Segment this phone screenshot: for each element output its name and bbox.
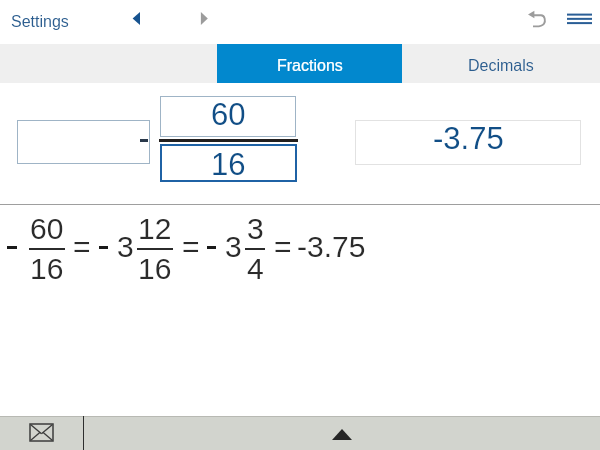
button[interactable]: Fractions (217, 44, 402, 83)
staticText: = (73, 230, 91, 264)
staticText: 16 (211, 147, 246, 182)
button[interactable]: Undo (525, 10, 547, 30)
button[interactable]: 60 (160, 96, 296, 137)
staticText: -3.75 (433, 121, 504, 156)
staticText: = (274, 230, 292, 264)
button[interactable]: Next (194, 6, 218, 30)
staticText: 3 (117, 230, 134, 264)
button[interactable]: Settings (6, 4, 74, 36)
staticText: 16 (138, 252, 172, 286)
staticText: Decimals (468, 57, 534, 75)
staticText: = (182, 230, 200, 264)
button[interactable]: 16 (160, 144, 297, 182)
staticText: 12 (138, 212, 172, 246)
button[interactable]: -3.75 (355, 120, 581, 165)
button[interactable]: Previous (126, 6, 150, 30)
staticText: 60 (211, 97, 246, 132)
button[interactable] (17, 120, 150, 164)
button[interactable]: Menu (567, 10, 592, 26)
staticText: Fractions (277, 57, 343, 75)
staticText: 3 (225, 230, 242, 264)
staticText: 16 (30, 252, 64, 286)
button[interactable]: Decimals (402, 44, 600, 83)
staticText: 60 (30, 212, 64, 246)
staticText: Settings (11, 13, 69, 31)
button[interactable]: Mail (0, 416, 83, 450)
staticText: 4 (247, 252, 264, 286)
staticText: 3 (247, 212, 264, 246)
button[interactable]: Expand (84, 416, 600, 450)
staticText: -3.75 (297, 230, 366, 264)
